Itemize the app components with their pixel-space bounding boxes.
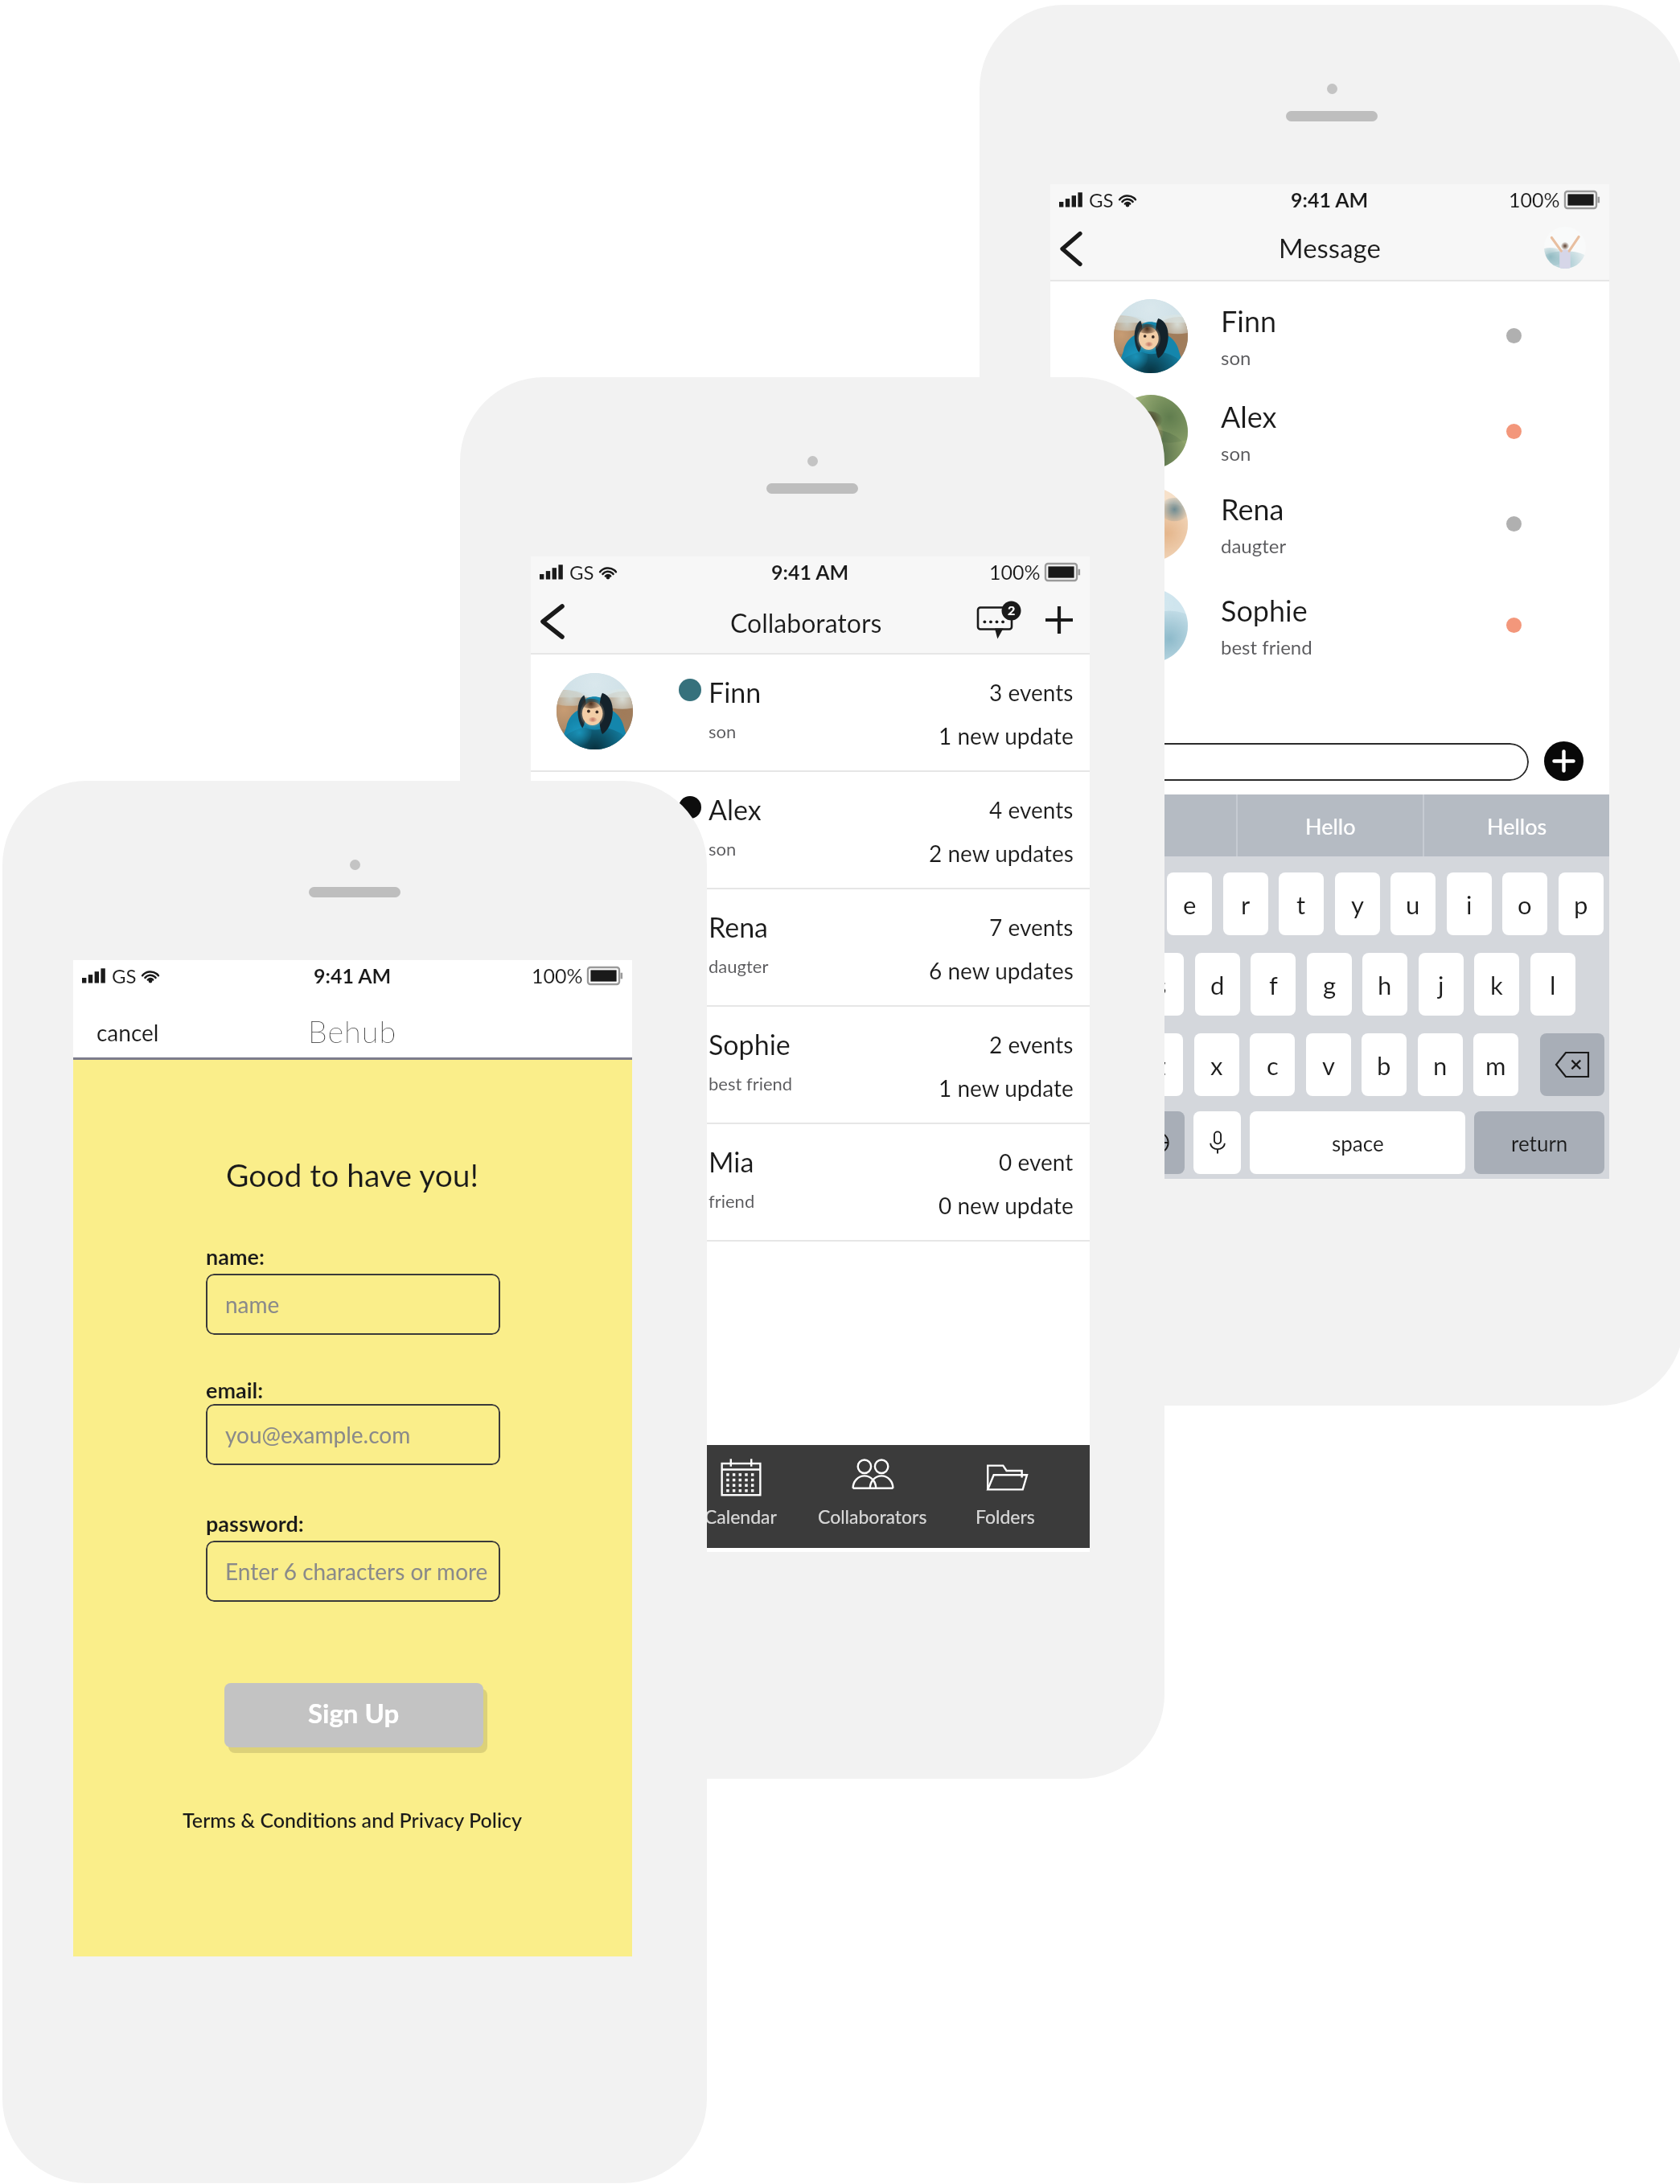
button[interactable]: r — [1223, 872, 1268, 935]
staticText: k — [1490, 970, 1503, 1000]
button[interactable]: name — [206, 1274, 500, 1335]
button[interactable]: q — [1055, 872, 1100, 935]
staticText: 2 events — [989, 1031, 1074, 1058]
staticText: v — [1322, 1050, 1335, 1080]
button[interactable]: t — [1279, 872, 1324, 935]
button[interactable]: d — [1195, 953, 1240, 1016]
staticText: GS — [1089, 188, 1114, 211]
button[interactable]: Hello — [1238, 794, 1423, 856]
button[interactable]: v — [1306, 1033, 1351, 1096]
button[interactable]: space — [1250, 1111, 1465, 1174]
button[interactable]: Calendar — [676, 1445, 805, 1546]
button[interactable]: Rena — [531, 888, 1090, 1005]
button[interactable]: Add collaborator — [1034, 587, 1084, 653]
staticText: cancel — [97, 1019, 159, 1046]
button[interactable]: n — [1418, 1033, 1463, 1096]
staticText: you@example.com — [225, 1421, 411, 1448]
staticText: s — [1156, 970, 1167, 1000]
button[interactable]: f — [1251, 953, 1296, 1016]
staticText: n — [1433, 1050, 1448, 1080]
button[interactable]: Mia — [531, 1123, 1090, 1240]
button[interactable]: p — [1559, 872, 1604, 935]
button[interactable]: c — [1250, 1033, 1295, 1096]
staticText: h — [1378, 970, 1392, 1000]
button[interactable]: Hellos — [1424, 794, 1609, 856]
staticText: password: — [206, 1510, 304, 1536]
staticText: Behub — [308, 1012, 397, 1049]
button[interactable]: l — [1530, 953, 1575, 1016]
staticText: Finn — [1221, 303, 1277, 338]
staticText: 9:41 AM — [771, 560, 849, 584]
button[interactable]: ” — [1050, 794, 1236, 856]
button[interactable]: g — [1307, 953, 1352, 1016]
staticText: 100% — [532, 963, 583, 987]
button[interactable]: Backspace — [1540, 1033, 1604, 1096]
button[interactable]: Add — [1544, 741, 1583, 781]
button[interactable]: Finn — [531, 653, 1090, 770]
staticText: g — [1323, 970, 1337, 1000]
staticText: Mia — [709, 1145, 754, 1178]
staticText: best friend — [709, 1073, 793, 1094]
button[interactable]: b — [1362, 1033, 1407, 1096]
staticText: 3 events — [989, 679, 1074, 706]
button[interactable]: i — [1447, 872, 1492, 935]
staticText: friend — [709, 1190, 755, 1211]
button[interactable]: Sophie — [531, 1005, 1090, 1123]
button[interactable]: Messages — [971, 587, 1021, 653]
staticText: 6 new updates — [929, 957, 1074, 984]
staticText: 2 — [1008, 602, 1016, 618]
button[interactable]: a — [1083, 953, 1128, 1016]
staticText: 9:41 AM — [1291, 187, 1369, 211]
button[interactable]: u — [1390, 872, 1436, 935]
staticText: d — [1210, 970, 1225, 1000]
staticText: daugter — [709, 955, 769, 976]
staticText: Alex — [709, 793, 762, 826]
button[interactable]: Back — [1050, 215, 1097, 280]
button[interactable]: Rena — [1050, 476, 1609, 573]
button[interactable]: y — [1335, 872, 1380, 935]
button[interactable]: Alex — [1050, 384, 1609, 480]
staticText: 123 — [1070, 1131, 1107, 1156]
button[interactable]: z — [1138, 1033, 1183, 1096]
button[interactable]: o — [1502, 872, 1547, 935]
staticText: GS — [112, 964, 137, 987]
staticText: email: — [206, 1377, 264, 1402]
button[interactable]: you@example.com — [206, 1404, 500, 1465]
button[interactable]: Dictate — [1193, 1111, 1241, 1174]
button[interactable]: Change keyboard — [1132, 1111, 1185, 1174]
staticText: q — [1070, 889, 1085, 919]
staticText: y — [1351, 889, 1364, 919]
staticText: Rena — [1221, 491, 1284, 526]
button[interactable]: m — [1473, 1033, 1518, 1096]
staticText: p — [1574, 889, 1588, 919]
button[interactable]: x — [1194, 1033, 1239, 1096]
button[interactable]: Terms & Conditions and Privacy Policy — [183, 1808, 523, 1832]
button[interactable]: return — [1474, 1111, 1604, 1174]
button[interactable]: Enter 6 characters or more — [206, 1541, 500, 1602]
button[interactable]: Alex — [531, 770, 1090, 888]
button[interactable]: cancel — [97, 999, 209, 1065]
staticText: Message — [1279, 232, 1381, 264]
button[interactable]: Folders — [941, 1445, 1070, 1546]
button[interactable]: Shift — [1055, 1033, 1129, 1096]
staticText: x — [1210, 1050, 1223, 1080]
staticText: space — [1332, 1131, 1384, 1156]
button[interactable]: k — [1474, 953, 1519, 1016]
button[interactable]: 123 — [1055, 1111, 1123, 1174]
button[interactable]: Message input — [1062, 743, 1529, 781]
staticText: Hello — [1305, 813, 1356, 839]
staticText: Rena — [709, 910, 769, 943]
button[interactable]: Sophie — [1050, 577, 1609, 674]
staticText: o — [1518, 889, 1532, 919]
button[interactable]: Sign Up — [224, 1683, 483, 1747]
button[interactable]: s — [1139, 953, 1184, 1016]
button[interactable]: Finn — [1050, 288, 1609, 384]
button[interactable]: Profile — [1544, 227, 1586, 269]
button[interactable]: Collaborators — [808, 1445, 937, 1546]
button[interactable]: e — [1167, 872, 1212, 935]
button[interactable]: Back — [531, 587, 577, 653]
button[interactable]: h — [1362, 953, 1407, 1016]
button[interactable]: j — [1419, 953, 1464, 1016]
